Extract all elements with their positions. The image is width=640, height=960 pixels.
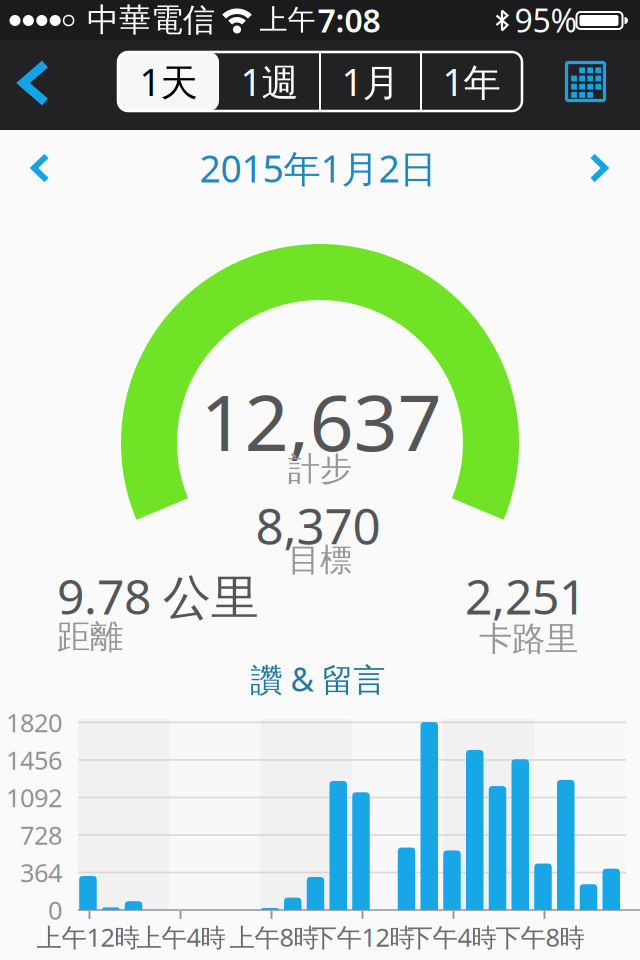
button[interactable]: 讚 & 留言	[240, 654, 395, 704]
button[interactable]: 1天	[118, 52, 219, 111]
staticText: 2015年1月2日	[199, 143, 436, 193]
staticText: 中華電信	[87, 0, 215, 40]
button[interactable]: 前一天	[16, 139, 63, 197]
staticText: 1年	[442, 57, 500, 106]
staticText: 目標	[288, 540, 352, 580]
staticText: 2,251	[465, 564, 586, 628]
button[interactable]: 1月	[320, 52, 421, 111]
staticText: 卡路里	[479, 618, 578, 659]
staticText: 9.78 公里	[57, 564, 259, 628]
staticText: 計步	[288, 449, 352, 489]
button[interactable]: 下一天	[575, 139, 622, 197]
staticText: 1456	[6, 743, 62, 777]
staticText: 7:08	[317, 0, 380, 41]
staticText: 上午4時	[136, 920, 225, 954]
staticText: 8,370	[255, 492, 380, 558]
staticText: 下午4時	[407, 920, 496, 954]
button[interactable]: 1年	[421, 52, 522, 111]
staticText: 下午8時	[495, 920, 584, 954]
staticText: 1天	[139, 57, 197, 106]
staticText: 1820	[6, 706, 62, 739]
button[interactable]: 返回	[3, 44, 63, 122]
staticText: 上午12時	[36, 920, 139, 954]
staticText: 95%	[514, 0, 577, 41]
staticText: 728	[20, 818, 62, 852]
staticText: 12,637	[200, 370, 441, 472]
staticText: 1月	[341, 57, 399, 106]
staticText: 364	[20, 856, 62, 889]
staticText: 上午8時	[229, 920, 318, 954]
staticText: 1週	[240, 57, 298, 106]
staticText: 下午12時	[311, 920, 414, 954]
button[interactable]: 行事曆	[556, 52, 615, 111]
staticText: 讚 & 留言	[250, 658, 385, 700]
button[interactable]: 1週	[219, 52, 320, 111]
staticText: 1092	[6, 781, 62, 814]
staticText: 0	[48, 893, 62, 927]
staticText: 距離	[57, 616, 123, 657]
staticText: 上午	[259, 3, 315, 37]
